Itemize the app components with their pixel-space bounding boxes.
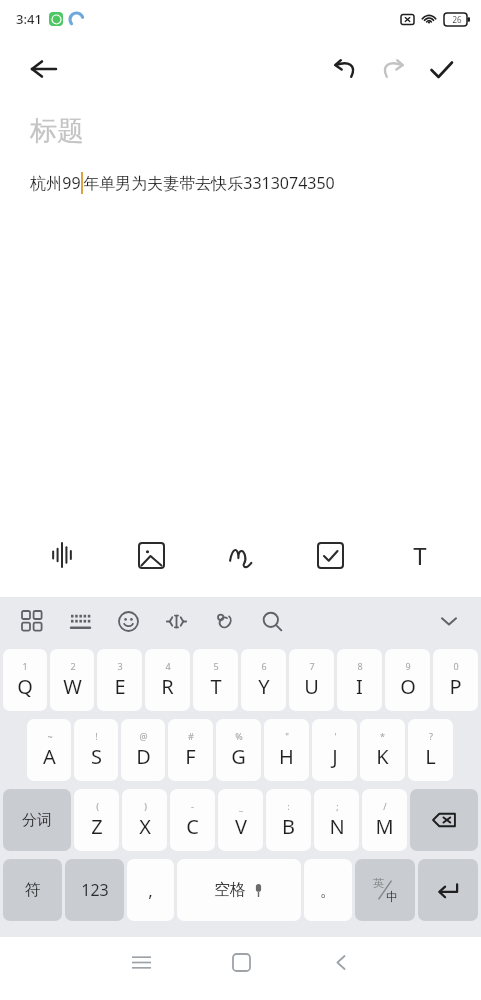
button[interactable]: Back — [291, 937, 391, 987]
staticText: K — [376, 743, 389, 770]
staticText: 中 — [386, 889, 398, 904]
button[interactable]: , — [127, 859, 174, 921]
staticText: 26 — [452, 14, 462, 25]
button[interactable]: Handwriting — [213, 527, 269, 583]
staticText: Y — [258, 673, 270, 700]
button[interactable]: Home — [191, 937, 291, 987]
button[interactable]: 符 — [3, 859, 62, 921]
button[interactable]: Grid — [8, 597, 56, 645]
staticText: ? — [429, 730, 433, 742]
staticText: 。 — [320, 880, 337, 901]
button[interactable]: 4 — [145, 649, 190, 711]
button[interactable]: Keyboard — [56, 597, 104, 645]
button[interactable]: 空格 — [177, 859, 301, 921]
staticText: O — [400, 673, 416, 700]
staticText: 2 — [70, 660, 76, 672]
button[interactable]: - — [170, 789, 215, 851]
button[interactable]: : — [266, 789, 311, 851]
button[interactable]: ~ — [27, 719, 71, 781]
button[interactable]: ' — [312, 719, 357, 781]
staticText: E — [114, 673, 126, 700]
staticText: _ — [239, 800, 243, 812]
button[interactable]: Done — [417, 45, 465, 93]
staticText: 8 — [357, 660, 363, 672]
button[interactable]: 0 — [433, 649, 478, 711]
button[interactable]: ! — [74, 719, 118, 781]
staticText: M — [375, 813, 394, 840]
staticText: F — [185, 743, 196, 770]
staticText: 杭州99 — [30, 172, 81, 194]
staticText: ' — [334, 730, 337, 742]
button[interactable]: Move cursor — [152, 597, 200, 645]
staticText: I — [356, 673, 363, 700]
button[interactable]: Backspace — [410, 789, 478, 851]
staticText: % — [235, 730, 243, 742]
button[interactable]: Search — [248, 597, 296, 645]
staticText: V — [235, 813, 247, 840]
button[interactable]: 9 — [385, 649, 430, 711]
button[interactable]: _ — [218, 789, 263, 851]
button[interactable]: % — [216, 719, 261, 781]
button[interactable]: Recent apps — [91, 937, 191, 987]
staticText: " — [285, 730, 289, 742]
staticText: ; — [336, 800, 339, 812]
button[interactable]: ; — [314, 789, 359, 851]
staticText: 1 — [22, 660, 28, 672]
staticText: R — [161, 673, 174, 700]
button[interactable]: Enter — [418, 859, 478, 921]
staticText: 0 — [453, 660, 459, 672]
button[interactable]: Checklist — [302, 527, 358, 583]
staticText: Q — [17, 673, 33, 700]
button[interactable]: * — [360, 719, 405, 781]
button[interactable]: ? — [408, 719, 453, 781]
staticText: 符 — [25, 880, 41, 900]
staticText: C — [186, 813, 199, 840]
staticText: 年单男为夫妻带去快乐3313074350 — [83, 172, 335, 194]
button[interactable]: @ — [121, 719, 165, 781]
button[interactable]: " — [264, 719, 309, 781]
staticText: W — [63, 673, 82, 700]
button[interactable]: # — [168, 719, 213, 781]
staticText: * — [380, 730, 385, 742]
button[interactable]: Image — [123, 527, 179, 583]
button[interactable]: 3 — [97, 649, 142, 711]
staticText: 9 — [405, 660, 411, 672]
button[interactable]: 。 — [304, 859, 352, 921]
staticText: @ — [139, 730, 148, 742]
button[interactable]: 7 — [289, 649, 334, 711]
button[interactable]: ( — [74, 789, 119, 851]
button[interactable]: 123 — [65, 859, 124, 921]
staticText: J — [332, 743, 338, 770]
button[interactable]: Language toggle — [355, 859, 415, 921]
button[interactable]: Emoji — [104, 597, 152, 645]
staticText: ( — [96, 800, 99, 812]
button[interactable]: 标题 — [0, 100, 481, 513]
button[interactable]: Undo — [321, 45, 369, 93]
button[interactable]: 5 — [193, 649, 238, 711]
button[interactable]: 分词 — [3, 789, 71, 851]
button[interactable]: 6 — [241, 649, 286, 711]
staticText: / — [383, 800, 387, 812]
staticText: X — [139, 813, 151, 840]
button[interactable]: Clipboard — [200, 597, 248, 645]
staticText: D — [136, 743, 151, 770]
button[interactable]: Audio — [34, 527, 90, 583]
button[interactable]: 8 — [337, 649, 382, 711]
staticText: 4 — [165, 660, 171, 672]
staticText: - — [191, 800, 194, 812]
button[interactable]: 1 — [3, 649, 47, 711]
button[interactable]: / — [362, 789, 407, 851]
staticText: P — [449, 673, 462, 700]
button[interactable]: Redo — [369, 45, 417, 93]
button[interactable]: 2 — [50, 649, 94, 711]
button[interactable]: ) — [122, 789, 167, 851]
staticText: 3 — [117, 660, 123, 672]
staticText: # — [188, 730, 194, 742]
staticText: ~ — [47, 730, 53, 742]
button[interactable]: Text format — [392, 527, 448, 583]
staticText: 7 — [309, 660, 315, 672]
staticText: H — [279, 743, 294, 770]
staticText: Z — [91, 813, 103, 840]
button[interactable]: Back — [22, 47, 66, 91]
button[interactable]: Hide keyboard — [425, 597, 473, 645]
